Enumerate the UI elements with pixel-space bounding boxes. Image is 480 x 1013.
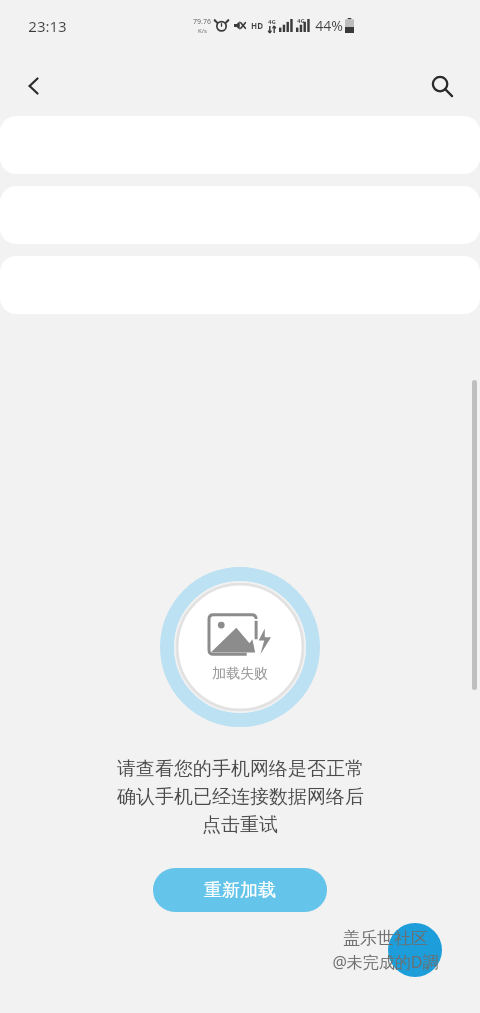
staticText: @未完成的D調 <box>332 951 439 973</box>
staticText: 23:13 <box>28 16 67 36</box>
button[interactable]: Back <box>8 60 60 112</box>
staticText: 请查看您的手机网络是否正常 <box>117 757 364 781</box>
staticText: 盖乐世社区 <box>343 928 428 949</box>
button[interactable]: Search <box>416 60 468 112</box>
staticText: 重新加载 <box>204 879 276 902</box>
button[interactable]: 重新加载 <box>153 868 327 912</box>
staticText: 加载失败 <box>212 665 268 683</box>
staticText: 点击重试 <box>202 813 278 837</box>
staticText: HD <box>251 20 263 31</box>
staticText: 79.76 <box>193 17 211 27</box>
staticText: 4G <box>268 18 276 26</box>
staticText: 4G <box>297 17 305 25</box>
staticText: K/s <box>198 27 207 35</box>
staticText: 44% <box>315 16 343 35</box>
staticText: 确认手机已经连接数据网络后 <box>117 785 364 809</box>
